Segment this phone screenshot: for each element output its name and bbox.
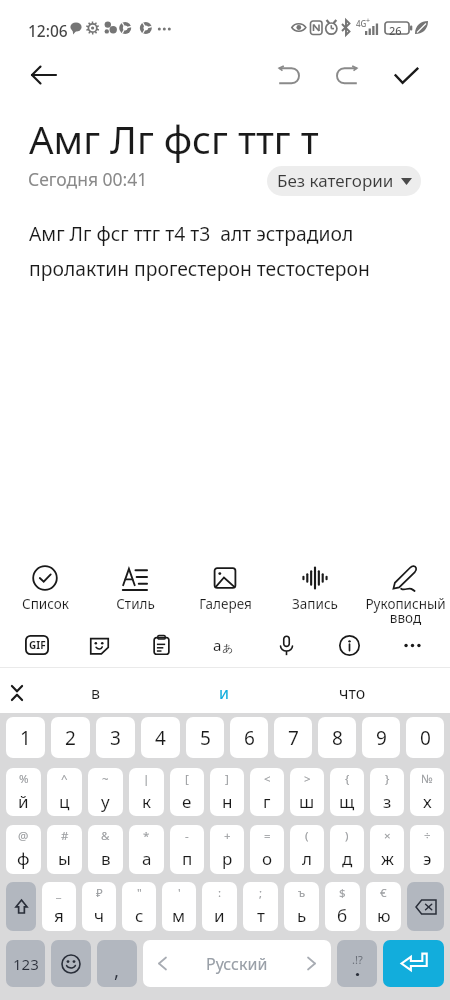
button[interactable]: Shift [6,882,36,931]
button[interactable]: @ [6,825,41,874]
button[interactable]: > [290,768,324,816]
button[interactable]: ) [330,825,364,874]
button[interactable]: % [6,768,41,816]
staticText: 1 [20,725,31,751]
button[interactable]: ъ [284,882,319,931]
button[interactable]: 2 [51,717,90,758]
staticText: н [222,790,233,813]
button[interactable]: Emoji [51,940,91,987]
staticText: 12:06 [28,20,68,41]
button[interactable]: & [88,825,123,874]
button[interactable]: Language [192,625,255,665]
staticText: " [137,885,142,901]
button[interactable]: More [381,625,444,665]
button[interactable]: Clipboard [130,625,192,665]
button[interactable]: Стиль [90,547,180,625]
button[interactable]: [ [170,768,204,816]
button[interactable]: Рукописный ввод [360,547,450,625]
staticText: Стиль [116,595,155,613]
staticText: ' [178,885,181,901]
button[interactable]: $ [325,882,360,931]
button[interactable]: : [202,882,237,931]
staticText: Рукописный ввод [365,595,446,625]
staticText: э [423,847,432,870]
staticText: Сегодня 00:41 [28,167,148,191]
button[interactable]: Undo [266,51,314,99]
button[interactable]: _ [42,882,76,931]
staticText: ь [297,904,307,927]
button[interactable]: ( [290,825,324,874]
button[interactable]: 0 [406,717,444,758]
button[interactable]: .!? [337,940,377,987]
button[interactable]: 8 [318,717,356,758]
button[interactable]: " [122,882,156,931]
staticText: 4 [155,725,166,751]
button[interactable]: < [250,768,284,816]
button[interactable]: Без категории [267,166,421,196]
button[interactable]: Stickers [68,625,130,665]
button[interactable]: ~ [88,768,123,816]
staticText: ъ [298,885,306,901]
button[interactable]: 6 [230,717,268,758]
staticText: ж [381,847,394,870]
button[interactable]: 9 [362,717,400,758]
button[interactable]: в [32,668,160,717]
button[interactable]: ₽ [82,882,116,931]
staticText: [ [185,771,189,787]
staticText: = [264,828,271,844]
button[interactable]: × [370,825,404,874]
button[interactable]: Enter [383,940,444,987]
button[interactable]: Save [382,51,430,99]
button[interactable]: ^ [47,768,82,816]
button[interactable]: Список [0,547,90,625]
button[interactable]: что [288,668,416,717]
button[interactable]: 4 [141,717,180,758]
button[interactable]: € [366,882,401,931]
staticText: х [423,790,432,813]
button[interactable]: Back [20,51,68,99]
button[interactable]: Redo [322,51,370,99]
staticText: < [264,771,271,787]
staticText: что [339,682,366,704]
button[interactable]: ' [162,882,196,931]
button[interactable]: ] [210,768,244,816]
button[interactable]: 3 [96,717,135,758]
button[interactable]: Collapse keyboard [0,668,32,717]
button[interactable]: } [370,768,404,816]
button[interactable]: 5 [186,717,224,758]
staticText: б [337,904,348,927]
button[interactable]: Русский [143,940,331,987]
staticText: и [214,904,225,927]
staticText: 3 [110,725,121,751]
button[interactable]: Voice [255,625,318,665]
button[interactable]: Info [318,625,381,665]
button[interactable]: ÷ [410,825,444,874]
button[interactable]: # [47,825,82,874]
button[interactable]: и [160,668,288,717]
staticText: 2 [65,725,76,751]
button[interactable]: ; [243,882,278,931]
button[interactable]: GIF [6,625,68,665]
staticText: у [101,790,110,813]
button[interactable]: | [129,768,164,816]
staticText: ы [58,847,71,870]
button[interactable]: 123 [6,940,45,987]
staticText: й [18,790,29,813]
button[interactable]: Запись [270,547,360,625]
staticText: в [101,847,111,870]
button[interactable]: № [410,768,444,816]
button[interactable]: - [170,825,204,874]
staticText: + [224,828,231,844]
staticText: 7 [288,725,299,751]
button[interactable]: { [330,768,364,816]
button[interactable]: 7 [274,717,312,758]
button[interactable]: * [129,825,164,874]
button[interactable]: = [250,825,284,874]
button[interactable]: + [210,825,244,874]
button[interactable]: Backspace [407,882,444,931]
button[interactable]: 1 [6,717,45,758]
button[interactable]: Галерея [180,547,270,625]
staticText: : [218,885,222,901]
staticText: г [263,790,271,813]
button[interactable]: , [97,940,137,987]
